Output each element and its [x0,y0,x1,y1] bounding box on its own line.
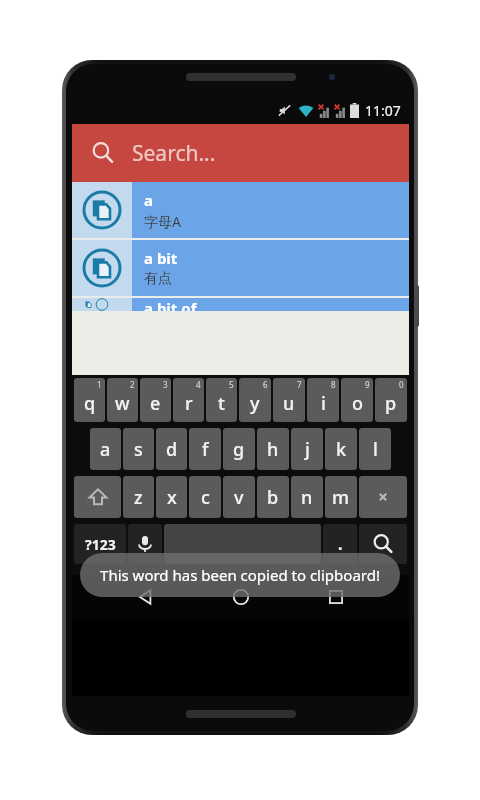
staticText: a bit of [144,298,197,311]
button[interactable]: 7 [273,378,305,422]
staticText: 7 [297,379,302,390]
staticText: d [166,437,178,462]
button[interactable]: 0 [375,378,407,422]
staticText: x [167,485,177,510]
staticText: a [100,437,111,462]
button[interactable]: 9 [341,378,373,422]
staticText: y [250,391,260,416]
staticText: u [283,391,295,416]
staticText: s [134,437,143,462]
staticText: t [218,391,225,416]
button[interactable]: m [325,476,357,518]
staticText: 3 [163,379,168,390]
staticText: This word has been copied to clipboard! [100,565,380,585]
staticText: 有点 [144,270,172,288]
button[interactable]: Voice input [128,524,162,564]
button[interactable]: Space [164,524,321,564]
button[interactable]: Backspace [359,476,407,518]
button[interactable]: . [323,524,357,564]
button[interactable]: 8 [307,378,339,422]
staticText: w [115,391,130,416]
staticText: 11:07 [365,101,401,120]
other: Search [90,140,116,166]
button[interactable]: Copy [72,182,409,238]
staticText: i [321,391,326,416]
button[interactable]: j [291,428,323,470]
staticText: ?123 [85,535,116,554]
staticText: 5 [229,379,234,390]
staticText: 4 [196,379,201,390]
button[interactable]: b [257,476,289,518]
staticText: 2 [130,379,135,390]
staticText: c [201,485,210,510]
staticText: p [385,391,397,416]
button[interactable]: c [189,476,221,518]
staticText: q [84,391,96,416]
button[interactable]: z [123,476,154,518]
button[interactable]: ?123 [74,524,126,564]
other: Copy [72,240,132,296]
staticText: 1 [97,379,102,390]
button[interactable]: 4 [173,378,204,422]
button[interactable]: a [90,428,121,470]
staticText: 字母A [144,212,181,231]
button[interactable]: Shift [74,476,121,518]
staticText: b [267,485,279,510]
button[interactable]: 2 [107,378,138,422]
button[interactable]: Home [219,575,263,619]
staticText: 6 [263,379,268,390]
button[interactable]: 6 [239,378,271,422]
other: Copy [72,182,132,238]
staticText: j [305,437,310,462]
button[interactable]: x [156,476,187,518]
staticText: e [150,391,161,416]
staticText: . [338,533,343,555]
other: Copy [72,298,132,311]
staticText: l [373,437,378,462]
button[interactable]: Copy [72,240,409,296]
button[interactable]: 5 [206,378,237,422]
staticText: z [134,485,143,510]
staticText: a bit [144,248,178,268]
button[interactable]: n [291,476,323,518]
button[interactable]: Back [123,575,167,619]
button[interactable]: Recent apps [314,575,358,619]
button[interactable]: h [257,428,289,470]
staticText: 9 [365,379,370,390]
button[interactable]: s [123,428,154,470]
staticText: o [352,391,363,416]
button[interactable]: Search [72,124,409,182]
staticText: n [301,485,313,510]
button[interactable]: l [359,428,391,470]
staticText: Search... [132,139,216,168]
button[interactable]: 1 [74,378,105,422]
staticText: h [267,437,279,462]
staticText: a [144,190,153,210]
button[interactable]: d [156,428,187,470]
staticText: 8 [331,379,336,390]
button[interactable]: Search [359,524,407,564]
staticText: r [185,391,193,416]
button[interactable]: v [223,476,255,518]
button[interactable]: k [325,428,357,470]
button[interactable]: g [223,428,255,470]
staticText: f [202,437,209,462]
staticText: m [332,485,350,510]
button[interactable]: f [189,428,221,470]
button[interactable]: 3 [140,378,171,422]
button[interactable]: Copy [72,298,409,311]
staticText: g [233,437,245,462]
staticText: 0 [399,379,404,390]
staticText: k [336,437,347,462]
staticText: v [234,485,244,510]
